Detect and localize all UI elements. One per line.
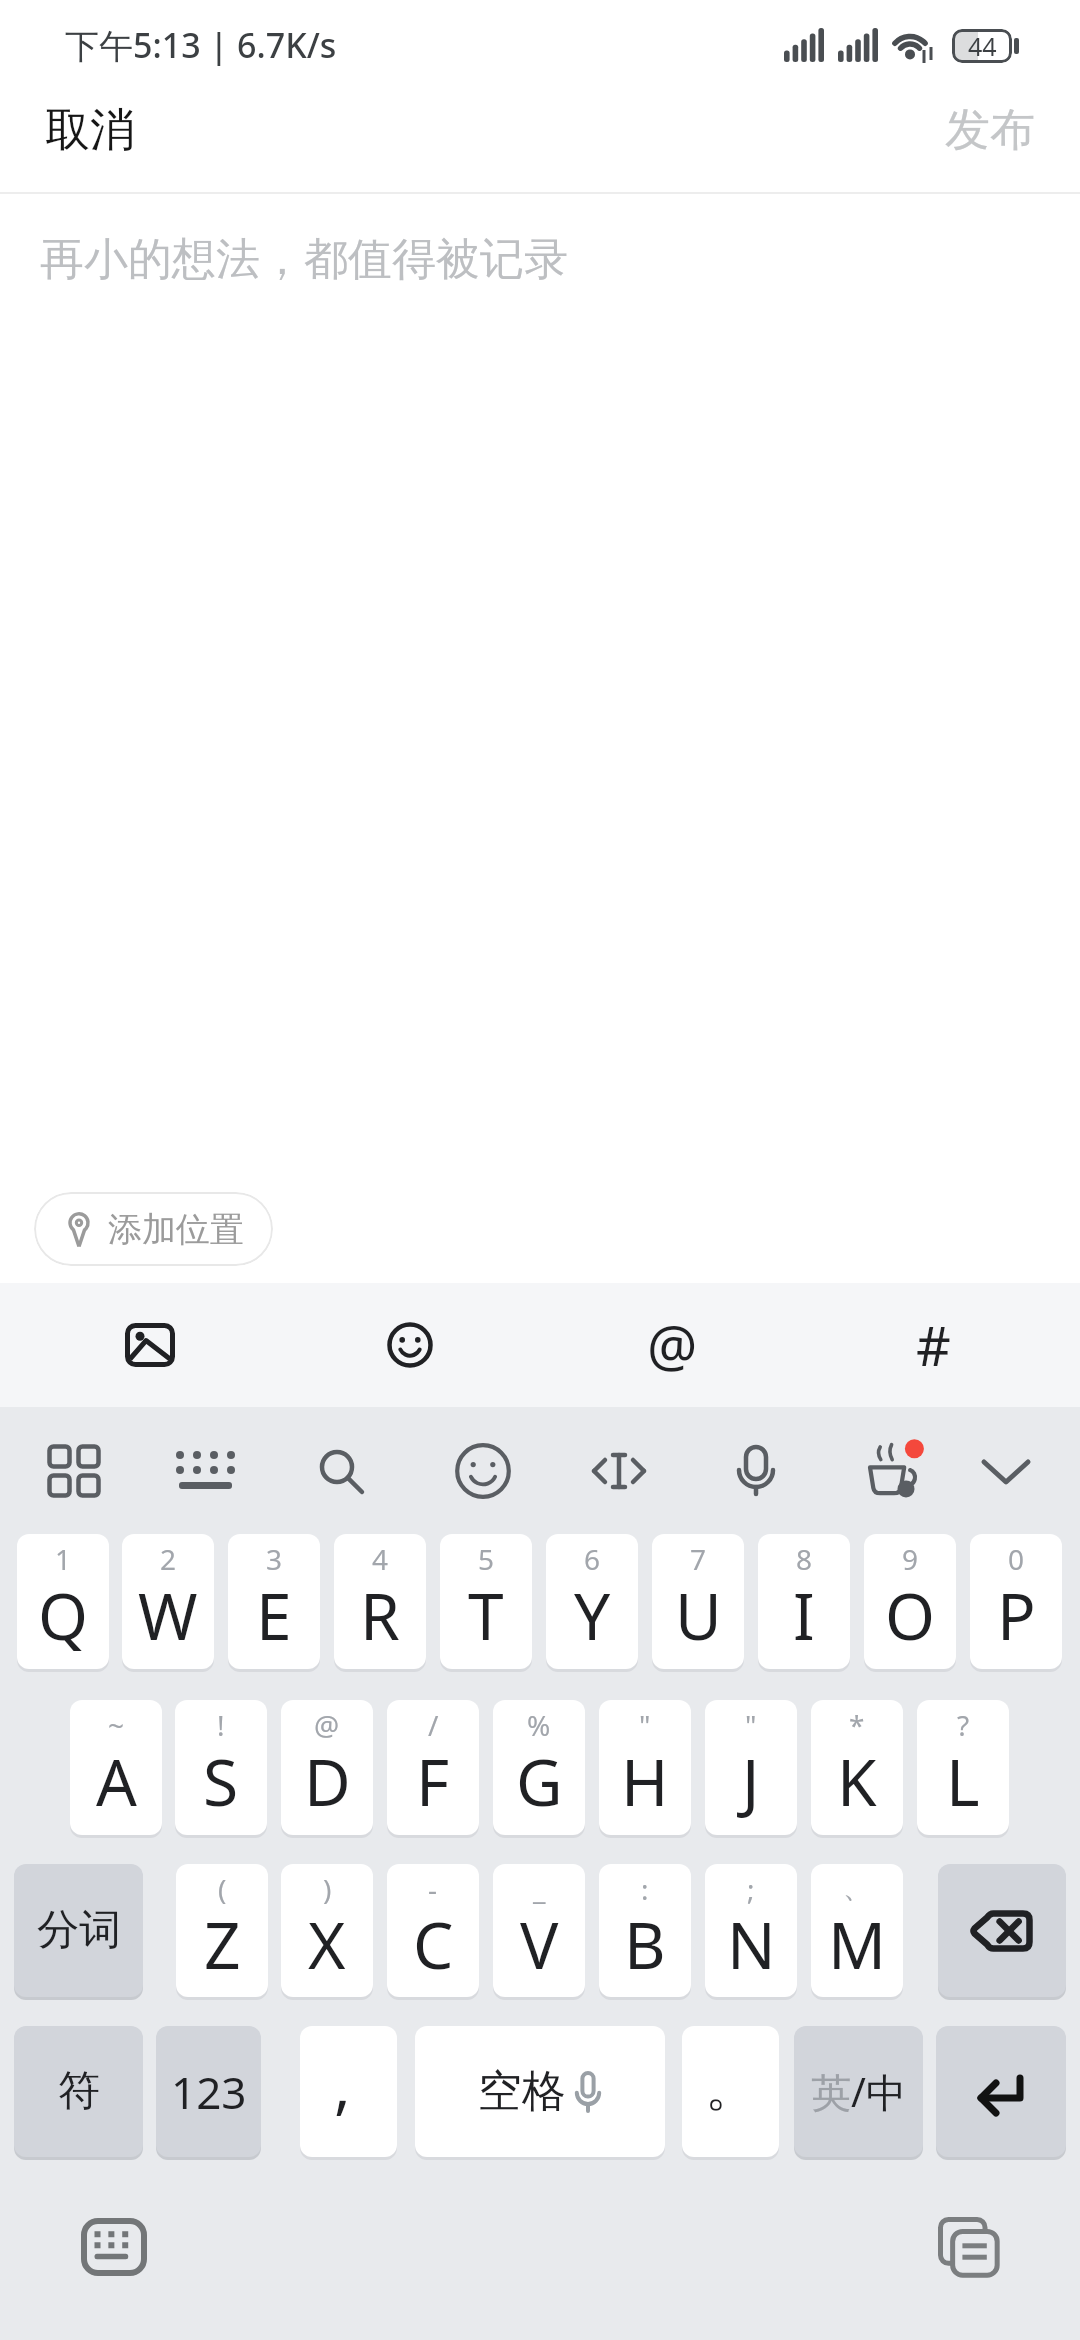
button[interactable]: @ (537, 1283, 807, 1407)
button[interactable] (12, 1407, 136, 1534)
staticText: T (468, 1572, 504, 1659)
staticText: E (256, 1572, 292, 1659)
button[interactable]: 、 (811, 1864, 903, 1997)
button[interactable]: ; (705, 1864, 797, 1997)
staticText: 1 (55, 1540, 72, 1578)
button[interactable] (143, 1407, 267, 1534)
staticText: 再小的想法，都值得被记录 (40, 232, 568, 287)
staticText: " (639, 1706, 651, 1744)
staticText: P (997, 1572, 1036, 1659)
staticText: " (745, 1706, 757, 1744)
staticText: 3 (266, 1540, 283, 1578)
button[interactable]: " (599, 1700, 691, 1835)
button[interactable]: 英/中 (794, 2026, 923, 2157)
staticText: @ (314, 1706, 340, 1744)
button[interactable]: 9 (864, 1534, 956, 1669)
staticText: ~ (108, 1706, 125, 1744)
staticText: 、 (843, 1870, 871, 1905)
staticText: 44 (968, 29, 997, 63)
button[interactable] (915, 2198, 1021, 2296)
button[interactable]: 4 (334, 1534, 426, 1669)
staticText: H (621, 1738, 669, 1825)
button[interactable]: ? (917, 1700, 1009, 1835)
staticText: B (624, 1901, 666, 1988)
button[interactable]: 符 (14, 2026, 143, 2157)
staticText: S (203, 1738, 239, 1825)
button[interactable]: 8 (758, 1534, 850, 1669)
staticText: J (742, 1738, 760, 1825)
staticText: ! (217, 1706, 225, 1744)
button[interactable]: 1 (17, 1534, 109, 1669)
button[interactable]: : (599, 1864, 691, 1997)
button[interactable] (944, 1407, 1068, 1534)
button[interactable]: ! (175, 1700, 267, 1835)
staticText: Z (204, 1901, 241, 1988)
button[interactable]: " (705, 1700, 797, 1835)
staticText: N (727, 1901, 776, 1988)
button[interactable]: 0 (970, 1534, 1062, 1669)
button[interactable]: _ (493, 1864, 585, 1997)
button[interactable]: 3 (228, 1534, 320, 1669)
staticText: ; (747, 1870, 755, 1908)
staticText: F (416, 1738, 450, 1825)
button[interactable] (15, 1283, 285, 1407)
button[interactable] (275, 1283, 545, 1407)
staticText: C (413, 1901, 454, 1988)
button[interactable]: # (798, 1283, 1068, 1407)
button[interactable]: 空格 (415, 2026, 665, 2157)
staticText: V (520, 1901, 559, 1988)
button[interactable] (694, 1407, 818, 1534)
staticText: - (428, 1870, 438, 1908)
button[interactable] (61, 2198, 167, 2296)
button[interactable] (557, 1407, 681, 1534)
button[interactable]: 2 (122, 1534, 214, 1669)
staticText: Q (38, 1572, 88, 1659)
button[interactable]: 分词 (14, 1864, 143, 1997)
staticText: ) (323, 1870, 332, 1908)
staticText: 下午5:13 | 6.7K/s (65, 22, 337, 68)
button[interactable]: 取消 (45, 92, 155, 168)
staticText: O (885, 1572, 935, 1659)
staticText: 123 (171, 2062, 247, 2122)
button[interactable]: 。 (682, 2026, 779, 2157)
staticText: _ (533, 1870, 546, 1908)
staticText: 0 (1008, 1540, 1025, 1578)
button[interactable]: 5 (440, 1534, 532, 1669)
button[interactable]: % (493, 1700, 585, 1835)
staticText: 5 (478, 1540, 495, 1578)
button[interactable]: ~ (70, 1700, 162, 1835)
staticText: M (828, 1901, 887, 1988)
button[interactable] (832, 1407, 956, 1534)
button[interactable]: 123 (156, 2026, 261, 2157)
button[interactable]: ) (281, 1864, 373, 1997)
staticText: 添加位置 (108, 1208, 244, 1251)
staticText: , (334, 2042, 351, 2126)
staticText: 空格 (478, 2064, 566, 2119)
staticText: 发布 (945, 102, 1035, 159)
staticText: ( (218, 1870, 227, 1908)
staticText: 英/中 (811, 2064, 906, 2119)
staticText: L (946, 1738, 980, 1825)
staticText: K (837, 1738, 877, 1825)
staticText: # (916, 1308, 951, 1382)
button[interactable]: 7 (652, 1534, 744, 1669)
button[interactable]: - (387, 1864, 479, 1997)
button[interactable]: * (811, 1700, 903, 1835)
button[interactable] (938, 1864, 1066, 1997)
button[interactable]: ( (176, 1864, 268, 1997)
staticText: G (516, 1738, 563, 1825)
staticText: D (304, 1738, 351, 1825)
staticText: U (675, 1572, 722, 1659)
button[interactable]: 发布 (945, 92, 1045, 168)
button[interactable]: @ (281, 1700, 373, 1835)
button[interactable] (279, 1407, 403, 1534)
button[interactable] (421, 1407, 545, 1534)
staticText: W (138, 1572, 198, 1659)
button[interactable]: / (387, 1700, 479, 1835)
button[interactable]: 6 (546, 1534, 638, 1669)
button[interactable]: , (300, 2026, 397, 2157)
staticText: 6 (584, 1540, 601, 1578)
button[interactable]: 添加位置 (34, 1192, 273, 1266)
staticText: 8 (796, 1540, 813, 1578)
button[interactable] (936, 2026, 1066, 2157)
